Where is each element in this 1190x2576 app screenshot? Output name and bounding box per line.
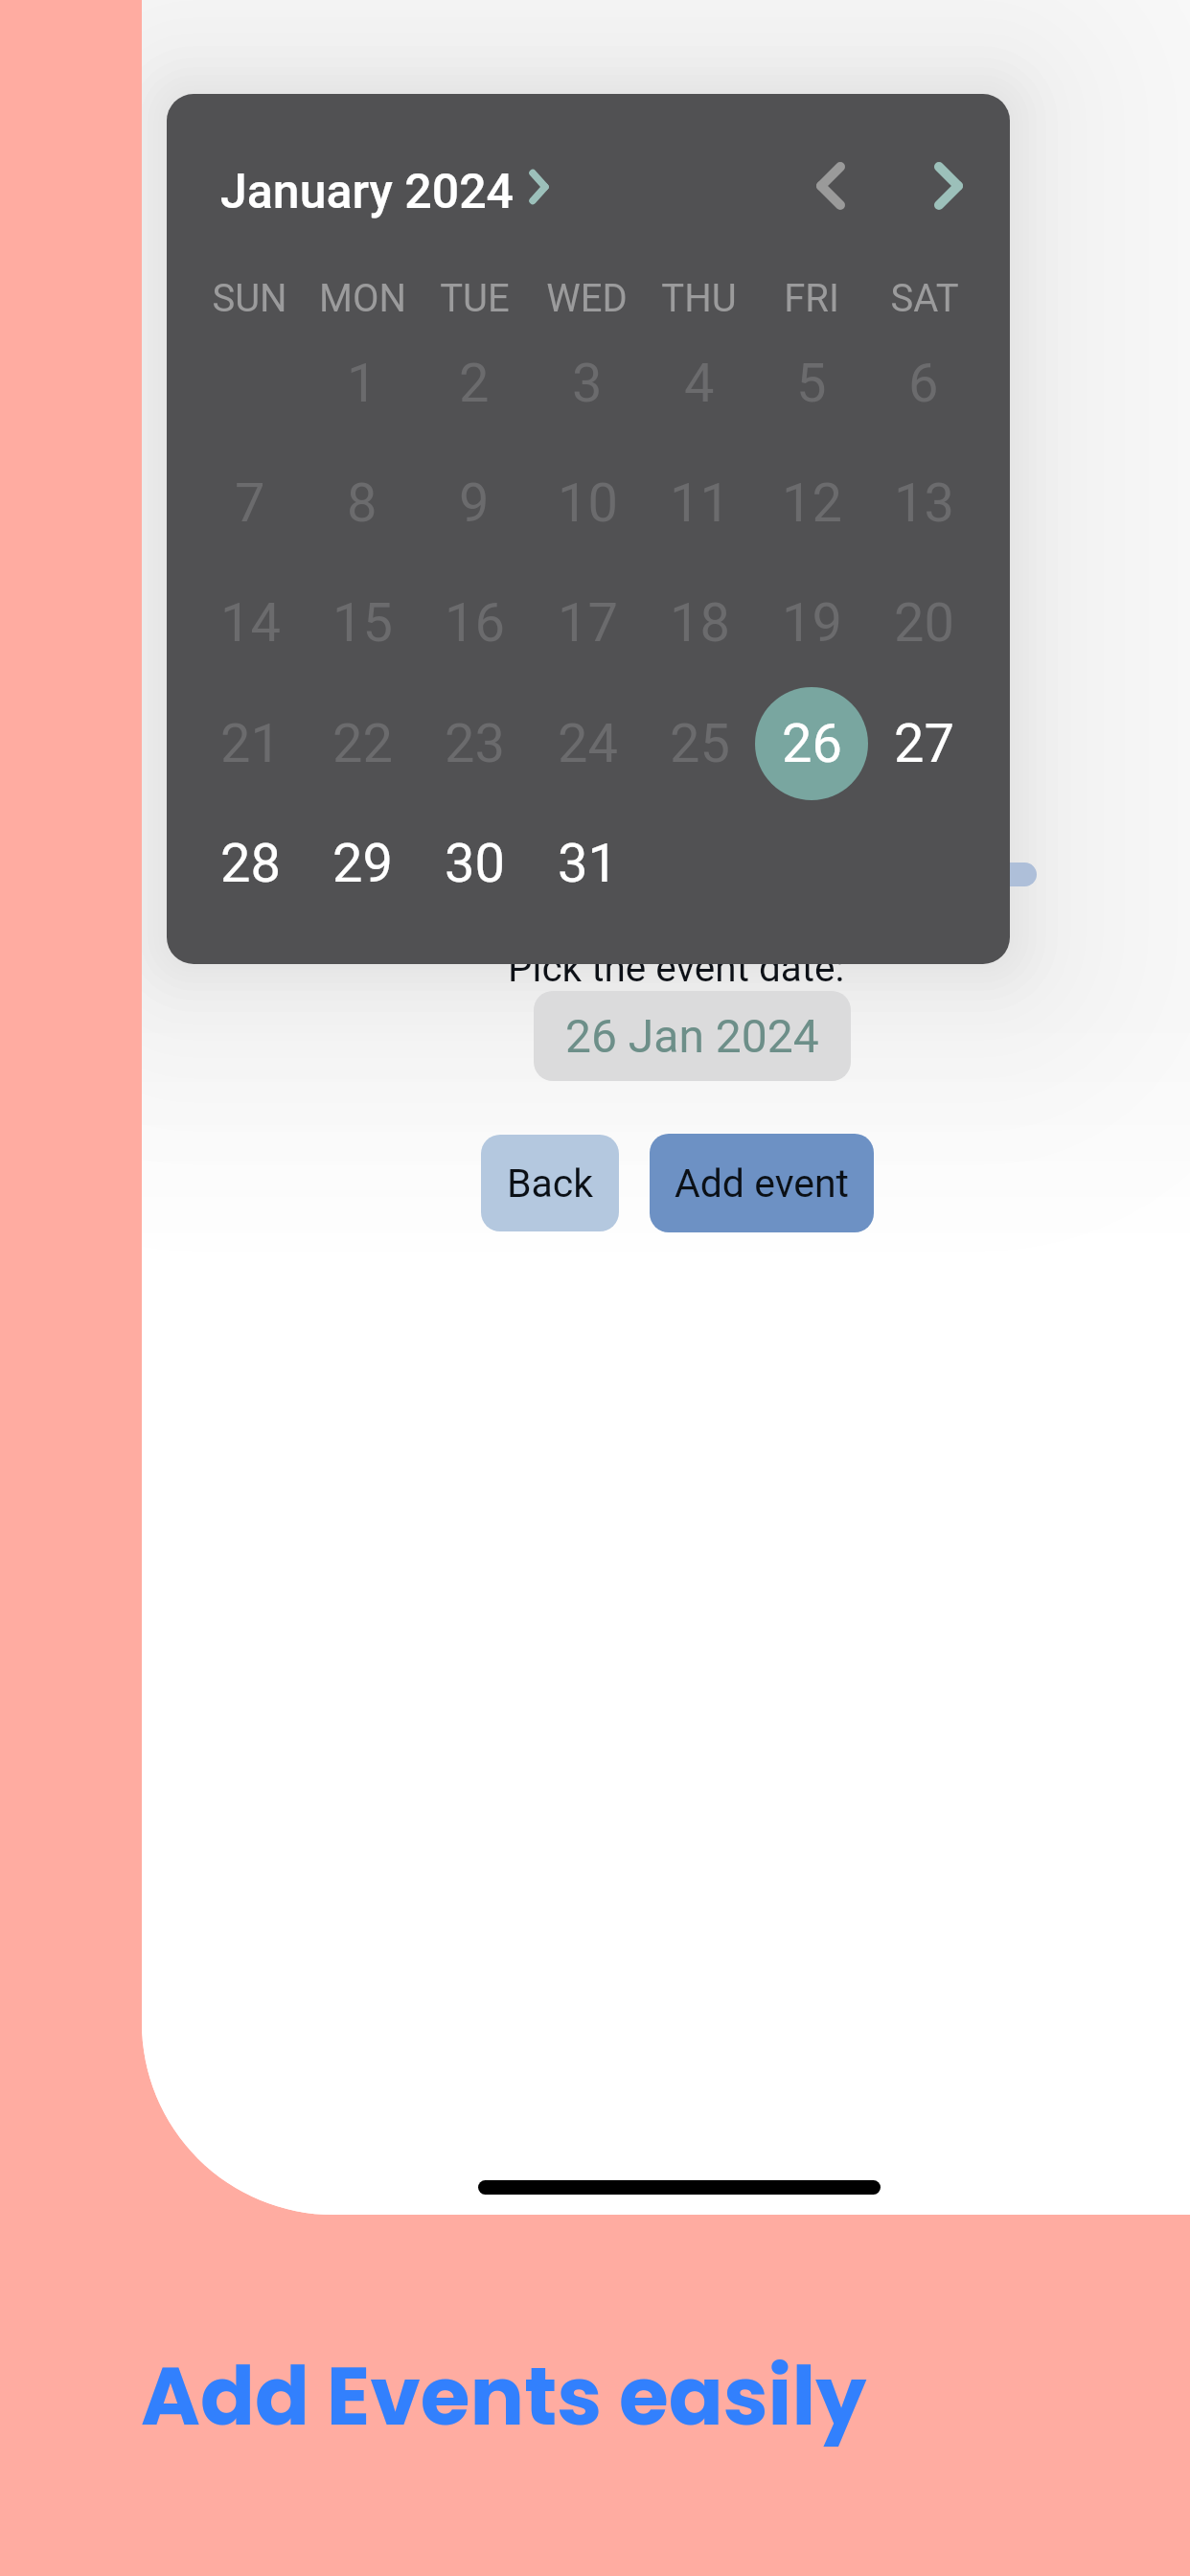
staticText: 5 xyxy=(796,352,827,415)
button[interactable]: 14 xyxy=(194,566,307,679)
staticText: 3 xyxy=(572,352,603,415)
button[interactable]: Back xyxy=(481,1135,619,1231)
button[interactable]: 18 xyxy=(643,566,756,679)
button[interactable]: 12 xyxy=(755,447,868,560)
staticText: 29 xyxy=(332,832,393,895)
staticText: 11 xyxy=(670,471,730,535)
staticText: 23 xyxy=(445,712,505,775)
staticText: 1 xyxy=(347,352,378,415)
button[interactable]: 31 xyxy=(531,807,644,920)
button[interactable]: 6 xyxy=(867,327,980,440)
button[interactable]: 27 xyxy=(867,687,980,800)
staticText: Back xyxy=(507,1161,594,1207)
button[interactable]: 7 xyxy=(194,447,307,560)
button[interactable]: 25 xyxy=(643,687,756,800)
staticText: SUN xyxy=(212,276,287,321)
staticText: 10 xyxy=(558,471,618,535)
staticText: Add event xyxy=(675,1161,850,1207)
staticText: 16 xyxy=(445,591,505,655)
staticText: 12 xyxy=(782,471,842,535)
button[interactable]: 1 xyxy=(306,327,419,440)
button[interactable]: 30 xyxy=(418,807,531,920)
staticText: 9 xyxy=(459,471,490,535)
button[interactable]: 19 xyxy=(755,566,868,679)
staticText: 26 Jan 2024 xyxy=(565,1009,819,1063)
staticText: 6 xyxy=(908,352,939,415)
staticText: MON xyxy=(319,276,406,321)
staticText: 24 xyxy=(558,712,618,775)
button[interactable]: 9 xyxy=(418,447,531,560)
button[interactable]: 10 xyxy=(531,447,644,560)
staticText: 19 xyxy=(782,591,842,655)
button[interactable]: 20 xyxy=(867,566,980,679)
staticText: WED xyxy=(546,276,628,321)
staticText: 20 xyxy=(894,591,954,655)
staticText: Pick the event date: xyxy=(508,945,845,990)
button[interactable]: 15 xyxy=(306,566,419,679)
button[interactable]: 26 xyxy=(755,687,868,800)
button[interactable]: January 2024 xyxy=(212,151,565,232)
button[interactable]: 24 xyxy=(531,687,644,800)
staticText: January 2024 xyxy=(220,164,514,220)
staticText: 15 xyxy=(332,591,393,655)
button[interactable]: Next month xyxy=(910,138,987,215)
staticText: 8 xyxy=(347,471,378,535)
button[interactable]: 13 xyxy=(867,447,980,560)
staticText: 21 xyxy=(220,712,281,775)
staticText: Add Events easily xyxy=(141,2340,867,2453)
button[interactable]: 17 xyxy=(531,566,644,679)
staticText: 17 xyxy=(558,591,618,655)
staticText: SAT xyxy=(890,276,959,321)
staticText: 31 xyxy=(558,832,618,895)
staticText: 7 xyxy=(235,471,265,535)
staticText: 30 xyxy=(445,832,505,895)
staticText: 25 xyxy=(670,712,730,775)
button[interactable]: 29 xyxy=(306,807,419,920)
staticText: 13 xyxy=(894,471,954,535)
staticText: 2 xyxy=(459,352,490,415)
button[interactable]: 16 xyxy=(418,566,531,679)
staticText: 4 xyxy=(684,352,715,415)
button[interactable]: 23 xyxy=(418,687,531,800)
button[interactable]: 28 xyxy=(194,807,307,920)
button[interactable]: Add event xyxy=(650,1134,874,1232)
button[interactable]: 11 xyxy=(643,447,756,560)
staticText: 14 xyxy=(220,591,281,655)
button[interactable]: Previous month xyxy=(792,138,869,215)
staticText: TUE xyxy=(440,276,510,321)
button[interactable]: 26 Jan 2024 xyxy=(534,991,851,1081)
staticText: 18 xyxy=(670,591,730,655)
button[interactable]: 5 xyxy=(755,327,868,440)
button[interactable]: 21 xyxy=(194,687,307,800)
staticText: THU xyxy=(661,276,737,321)
staticText: FRI xyxy=(784,276,839,321)
button[interactable]: 3 xyxy=(531,327,644,440)
staticText: 26 xyxy=(782,712,842,775)
staticText: 27 xyxy=(894,712,954,775)
button[interactable]: 4 xyxy=(643,327,756,440)
staticText: 22 xyxy=(332,712,393,775)
staticText: 28 xyxy=(220,832,281,895)
button[interactable]: 22 xyxy=(306,687,419,800)
button[interactable]: 8 xyxy=(306,447,419,560)
button[interactable]: 2 xyxy=(418,327,531,440)
